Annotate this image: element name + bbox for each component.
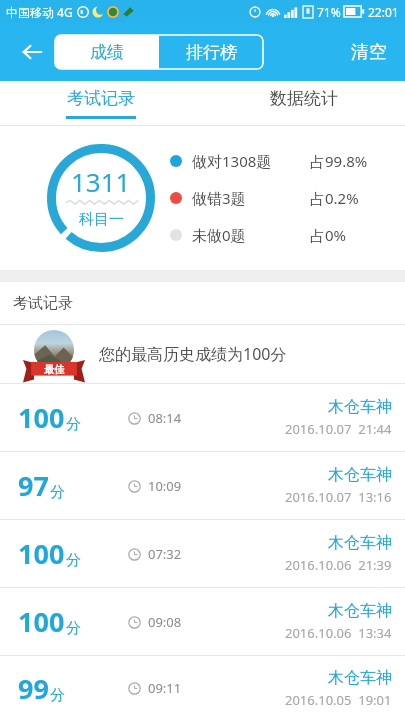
staticText: 您的最高历史成绩为100分 xyxy=(99,343,287,365)
button[interactable]: 数据统计 xyxy=(202,81,405,125)
staticText: 占0% xyxy=(310,225,347,245)
staticText: 未做0题 xyxy=(192,225,246,245)
staticText: 2016.10.06 21:39 xyxy=(285,556,392,574)
staticText: 2016.10.07 21:44 xyxy=(285,420,392,438)
staticText: 做错3题 xyxy=(192,188,246,208)
staticText: 分 xyxy=(66,415,81,434)
staticText: 08:14 xyxy=(148,409,182,427)
staticText: 2016.10.05 19:01 xyxy=(285,691,392,709)
staticText: 排行榜 xyxy=(186,42,237,63)
button[interactable]: 最佳 xyxy=(0,325,405,384)
button[interactable]: 100 xyxy=(0,588,405,656)
staticText: 中国移动 4G xyxy=(6,4,73,20)
staticText: 分 xyxy=(50,686,65,705)
staticText: 木仓车神 xyxy=(328,465,392,485)
staticText: 2016.10.07 13:16 xyxy=(285,488,392,506)
staticText: 清空 xyxy=(351,41,387,64)
button[interactable]: 100 xyxy=(0,384,405,452)
staticText: 数据统计 xyxy=(270,88,338,109)
button[interactable]: 100 xyxy=(0,520,405,588)
staticText: 占99.8% xyxy=(310,151,368,171)
staticText: 木仓车神 xyxy=(328,668,392,688)
staticText: 09:11 xyxy=(148,679,182,697)
staticText: 99 xyxy=(18,670,49,707)
button[interactable]: 97 xyxy=(0,452,405,520)
staticText: 100 xyxy=(18,535,65,572)
staticText: 最佳 xyxy=(44,363,64,376)
button[interactable]: 排行榜 xyxy=(159,35,263,69)
staticText: 07:32 xyxy=(148,545,182,563)
staticText: 22:01 xyxy=(368,4,399,20)
staticText: 2016.10.06 13:34 xyxy=(285,624,392,642)
staticText: 10:09 xyxy=(148,477,182,495)
staticText: 分 xyxy=(66,551,81,570)
staticText: 成绩 xyxy=(90,42,124,63)
staticText: 考试记录 xyxy=(67,88,135,109)
button[interactable]: 成绩 xyxy=(55,35,159,69)
staticText: 09:08 xyxy=(148,613,182,631)
staticText: 100 xyxy=(18,603,65,640)
button[interactable]: 清空 xyxy=(341,33,397,72)
staticText: 木仓车神 xyxy=(328,533,392,553)
button[interactable]: 99 xyxy=(0,656,405,720)
staticText: 1311 xyxy=(71,164,131,199)
button[interactable]: Back xyxy=(10,30,54,74)
staticText: 分 xyxy=(66,619,81,638)
staticText: 做对1308题 xyxy=(192,151,272,171)
button[interactable]: 考试记录 xyxy=(0,81,202,125)
staticText: 考试记录 xyxy=(13,294,73,313)
staticText: 100 xyxy=(18,399,65,436)
staticText: 占0.2% xyxy=(310,188,359,208)
staticText: 97 xyxy=(18,467,49,504)
staticText: 分 xyxy=(50,483,65,502)
staticText: 科目一 xyxy=(79,210,124,229)
staticText: 71% xyxy=(317,4,341,20)
staticText: 木仓车神 xyxy=(328,397,392,417)
staticText: 木仓车神 xyxy=(328,601,392,621)
